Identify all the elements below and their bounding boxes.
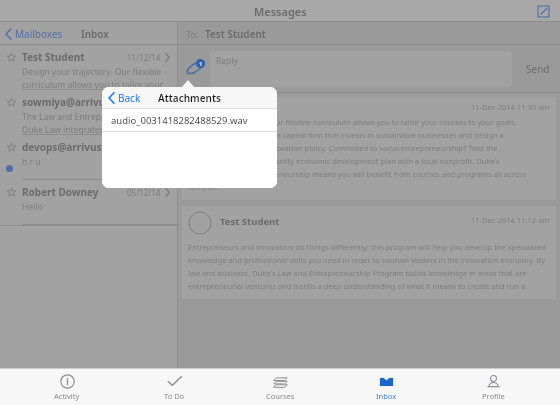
staticText: Robert Downey [22,185,99,199]
button[interactable]: audio_0031418282488529.wav [102,109,277,132]
staticText: h r u [22,156,41,168]
staticText: Inbox [376,391,397,401]
staticText: sowmiya@arrivusy [22,95,116,109]
button[interactable]: Inbox [347,369,425,405]
button[interactable]: Test Student [0,45,177,90]
staticText: To: [186,28,199,41]
staticText: campus. [188,182,218,192]
staticText: Mailboxes [15,27,63,41]
button[interactable]: 11-Dec-2014 11:30 am [182,97,556,200]
staticText: ​ Draft environmental innovation policy.… [188,143,498,153]
staticText: Hello [22,201,43,213]
staticText: 11-Dec-2014 11:12 am [471,215,550,225]
button[interactable]: Attachments [184,58,206,80]
staticText: Inbox [81,27,109,41]
staticText: 1 [199,60,203,68]
staticText: Test Student [220,215,280,228]
staticText: Send [526,62,550,76]
staticText: Courses [266,391,295,401]
staticText: ​ commitment to entrepreneurship means y… [188,169,526,179]
staticText: entrepreneurial ventures and instills a … [188,281,550,291]
staticText: The Law and Entrepre [22,111,110,123]
button[interactable]: Back [108,91,141,105]
button[interactable]: Mailboxes [5,27,63,41]
staticText: knowledge and professional skills you ne… [188,255,550,265]
staticText: 11/12/14 [127,52,161,63]
staticText: Design your trajectory. Our flexible [22,66,162,78]
button[interactable]: Compose [534,2,552,20]
staticText: Duke Law integrates r [22,124,110,135]
staticText: 11-Dec-2014 11:30 am [471,102,550,112]
staticText: Design your trajectory. Our flexible cur… [188,117,550,127]
button[interactable]: Activity [28,369,106,405]
staticText: Attachments [158,91,221,105]
staticText: 05/12/14 [127,187,161,198]
staticText: Messages [254,4,307,19]
staticText: devops@arrivusyst [22,140,117,154]
button[interactable]: Test Student [182,206,556,299]
button[interactable]: Send [522,62,554,76]
staticText: To Do [164,391,185,401]
button[interactable]: Robert Downey [0,180,177,225]
staticText: Activity [54,391,80,401]
staticText: audio_0031418282488529.wav [111,114,248,127]
staticText: Back [118,91,141,105]
staticText: Profile [482,391,505,401]
staticText: Test Student [205,27,266,41]
staticText: law and business, Duke's Law and Entrepr… [188,268,550,278]
staticText: ​ lead and create a community economic d… [188,156,500,166]
staticText: curriculum allows you to tailor your… [22,79,169,90]
staticText: Reply [216,55,238,67]
button[interactable]: To Do [135,369,213,405]
button[interactable]: devops@arrivusyst [0,135,177,180]
staticText: Entrepreneurs and innovators do things d… [188,242,550,252]
button[interactable]: sowmiya@arrivusy [0,90,177,135]
staticText: Test Student [22,50,85,64]
button[interactable]: Profile [454,369,532,405]
staticText: ​ Work with a local venture capital firm… [188,130,504,140]
button[interactable]: Courses [241,369,319,405]
